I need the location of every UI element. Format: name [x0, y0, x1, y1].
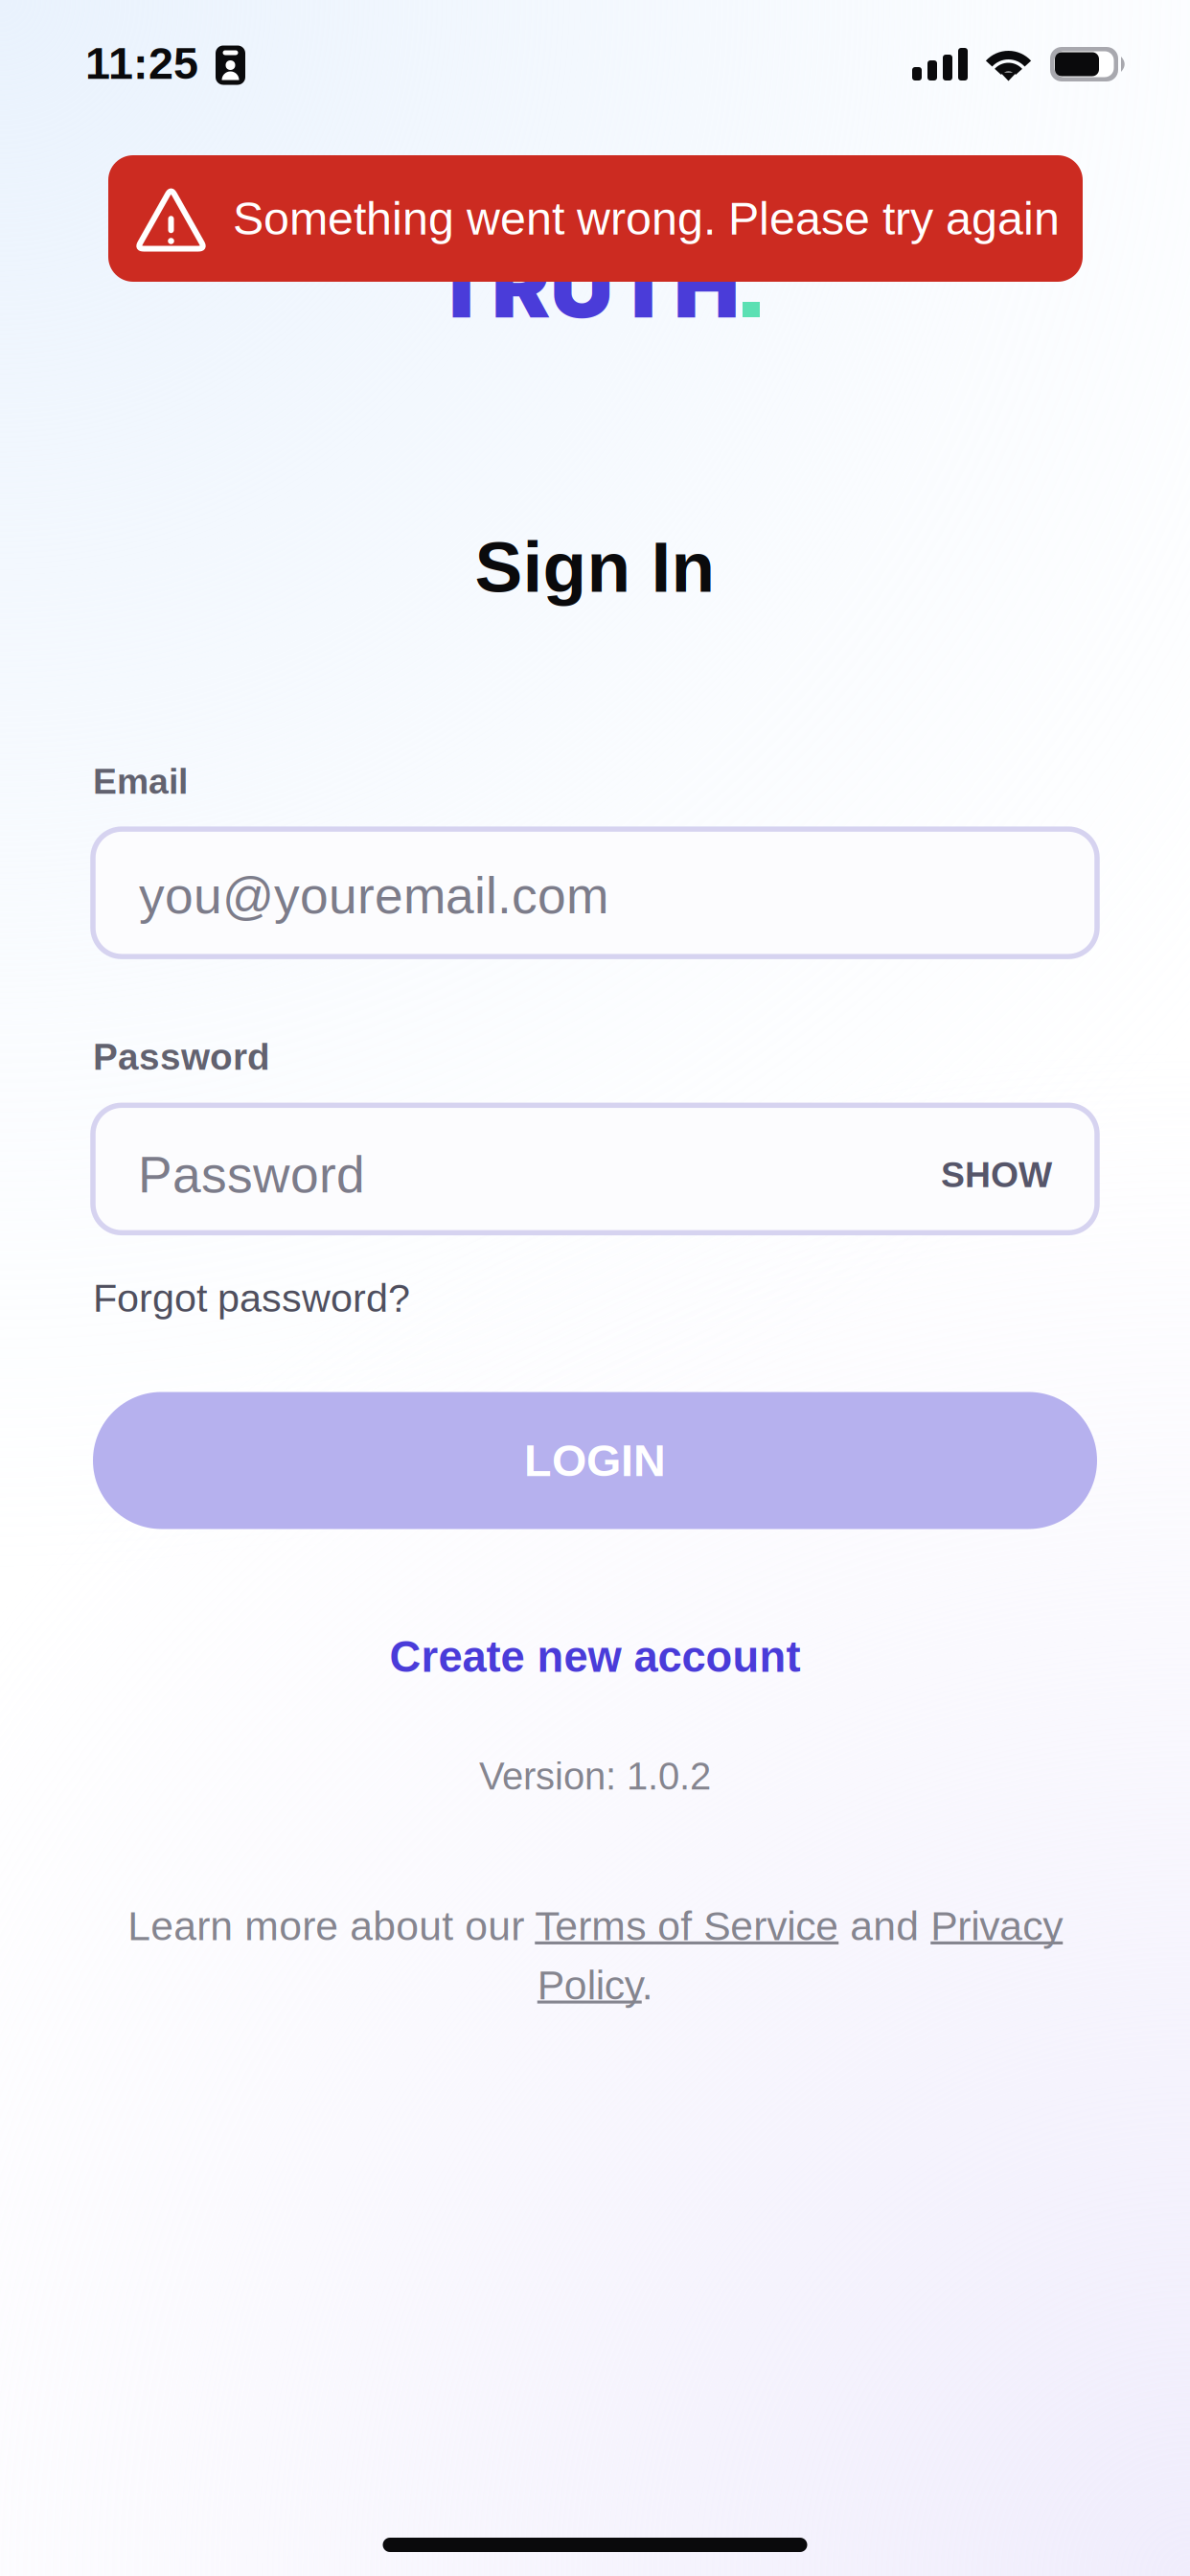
- staticText: SHOW: [941, 1155, 1052, 1195]
- button[interactable]: LOGIN: [93, 1392, 1097, 1529]
- staticText: Forgot password?: [93, 1276, 410, 1320]
- staticText: Version: 1.0.2: [479, 1755, 711, 1798]
- staticText: 11:25: [85, 38, 198, 88]
- button[interactable]: SHOW: [941, 1120, 1097, 1218]
- staticText: Email: [93, 761, 188, 801]
- staticText: Password: [138, 1146, 365, 1203]
- staticText: Create new account: [389, 1633, 801, 1681]
- staticText: LOGIN: [524, 1435, 666, 1485]
- button[interactable]: Create new account: [389, 1633, 801, 1681]
- button[interactable]: Forgot password?: [93, 1276, 410, 1320]
- staticText: Password: [93, 1036, 270, 1077]
- staticText: Sign In: [475, 527, 715, 607]
- staticText: TRUTH: [431, 232, 740, 339]
- staticText: you@youremail.com: [139, 867, 608, 924]
- staticText: Something went wrong. Please try again: [233, 193, 1060, 244]
- staticText: Learn more about our Terms of Service an…: [127, 1903, 1063, 2008]
